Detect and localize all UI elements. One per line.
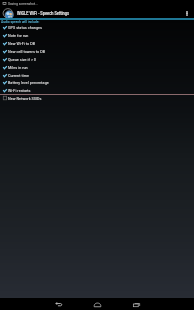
staticText: GPS status changes: [8, 25, 43, 30]
button[interactable]: Back: [48, 298, 68, 310]
staticText: Audio speech will include:: [1, 20, 40, 24]
button[interactable]: Battery level percentage: [0, 78, 194, 86]
staticText: New Wi-Fi to DB: [8, 41, 35, 46]
button[interactable]: New Network SSIDs: [0, 94, 194, 102]
button[interactable]: Note for run: [0, 31, 194, 39]
button[interactable]: GPS status changes: [0, 23, 194, 31]
button[interactable]: Miles in run: [0, 63, 194, 71]
button[interactable]: More options: [180, 7, 194, 19]
button[interactable]: Recent apps: [126, 298, 146, 310]
staticText: Queue size if > 0: [8, 57, 36, 62]
staticText: Note for run: [8, 33, 29, 38]
button[interactable]: New cell towers to DB: [0, 47, 194, 55]
button[interactable]: Wi-Fi restarts: [0, 86, 194, 94]
staticText: Current time: [8, 73, 29, 78]
button[interactable]: Current time: [0, 71, 194, 79]
staticText: New Network SSIDs: [8, 96, 42, 101]
button[interactable]: Queue size if > 0: [0, 55, 194, 63]
staticText: New cell towers to DB: [8, 49, 46, 54]
staticText: Miles in run: [8, 65, 28, 70]
button[interactable]: New Wi-Fi to DB: [0, 39, 194, 47]
button[interactable]: Home: [87, 298, 107, 310]
staticText: Saving screenshot...: [8, 2, 39, 6]
staticText: Wi-Fi restarts: [8, 88, 31, 93]
staticText: Battery level percentage: [8, 80, 49, 85]
staticText: WiGLE WiFi - Speech Settings: [17, 11, 70, 16]
